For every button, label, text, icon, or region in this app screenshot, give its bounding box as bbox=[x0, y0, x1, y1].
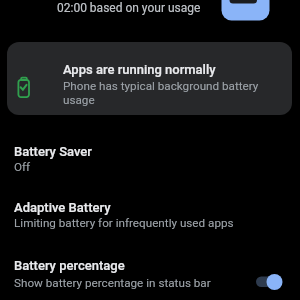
staticText: 02:00 based on your usage bbox=[57, 1, 201, 15]
staticText: Adaptive Battery bbox=[14, 200, 111, 215]
button[interactable]: Battery percentage bbox=[0, 245, 300, 300]
staticText: Off bbox=[14, 160, 31, 174]
staticText: Limiting battery for infrequently used a… bbox=[14, 216, 234, 230]
staticText: Battery percentage bbox=[14, 258, 125, 273]
staticText: Battery Saver bbox=[14, 144, 92, 159]
button[interactable]: Apps are running normally bbox=[7, 42, 292, 115]
staticText: Apps are running normally bbox=[63, 62, 216, 77]
staticText: Show battery percentage in status bar bbox=[14, 276, 211, 290]
button[interactable]: Battery Saver bbox=[0, 131, 300, 184]
button[interactable]: Adaptive Battery bbox=[0, 187, 300, 244]
staticText: Phone has typical background battery usa… bbox=[63, 79, 259, 107]
